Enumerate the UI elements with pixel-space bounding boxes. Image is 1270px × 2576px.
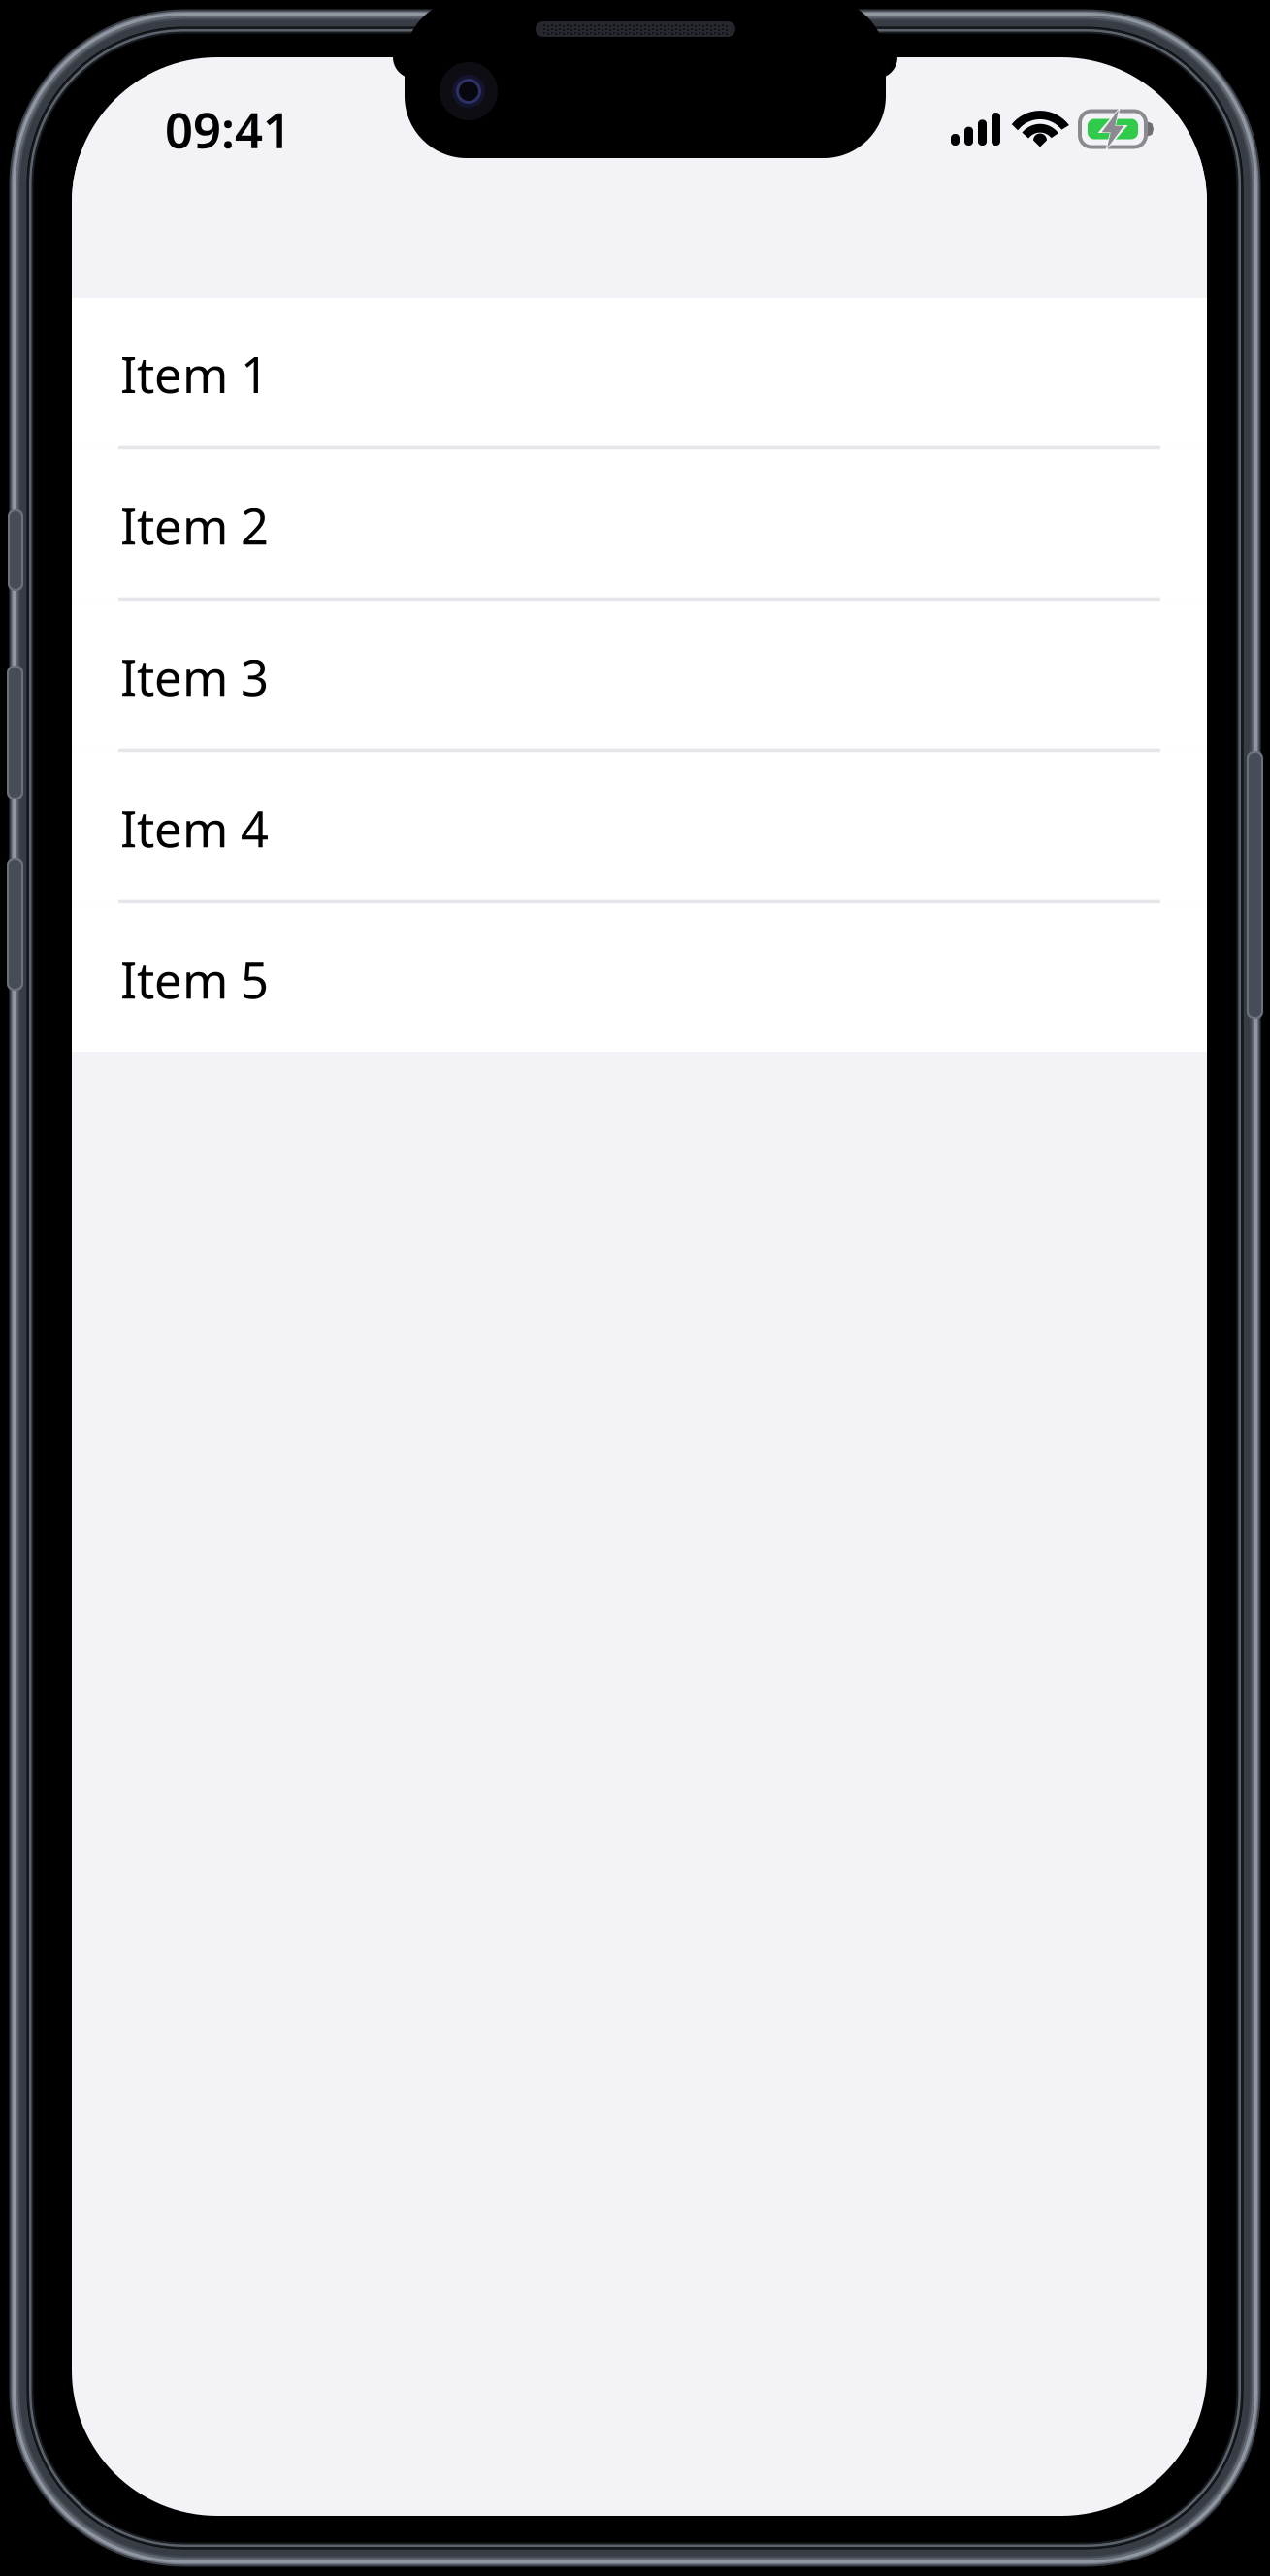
staticText: Item 1 bbox=[120, 341, 269, 407]
button[interactable]: Item 4 bbox=[72, 752, 1207, 904]
staticText: Item 2 bbox=[120, 493, 269, 558]
staticText: Item 4 bbox=[120, 796, 269, 861]
button[interactable]: Item 1 bbox=[72, 298, 1207, 450]
button[interactable]: Item 2 bbox=[72, 450, 1207, 601]
button[interactable]: Item 5 bbox=[72, 904, 1207, 1052]
staticText: Item 5 bbox=[120, 947, 269, 1012]
staticText: Item 3 bbox=[120, 644, 269, 709]
staticText: 09:41 bbox=[165, 96, 291, 162]
button[interactable]: Item 3 bbox=[72, 601, 1207, 752]
